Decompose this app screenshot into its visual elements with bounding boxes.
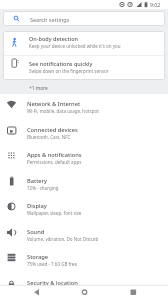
staticText: Connected devices xyxy=(27,126,78,134)
staticText: Security & location xyxy=(27,279,78,287)
staticText: Apps & notifications xyxy=(27,151,82,159)
button[interactable]: Display xyxy=(0,196,168,222)
staticText: 75% used - 7.60 GB free xyxy=(27,261,77,267)
button[interactable]: Connected devices xyxy=(0,120,168,146)
button[interactable] xyxy=(26,285,48,300)
staticText: Permissions, default apps xyxy=(27,159,82,165)
button[interactable]: Search settings xyxy=(3,11,165,26)
button[interactable]: Security & location xyxy=(0,273,168,299)
button[interactable]: Battery xyxy=(0,171,168,197)
button[interactable]: Apps & notifications xyxy=(0,145,168,171)
staticText: Wi-Fi, mobile, data usage, hotspot xyxy=(27,108,99,114)
staticText: Battery xyxy=(27,177,48,185)
staticText: +1 more xyxy=(29,85,48,92)
staticText: See notifications quickly xyxy=(29,60,93,67)
staticText: Volume, vibration, Do Not Disturb xyxy=(27,236,99,242)
staticText: Bluetooth, Cast, NFC xyxy=(27,134,71,140)
staticText: Display xyxy=(27,202,47,210)
button[interactable]: +1 more xyxy=(3,81,165,94)
button[interactable]: Network & Internet xyxy=(0,94,168,120)
button[interactable]: Storage xyxy=(0,247,168,273)
staticText: Storage xyxy=(27,253,49,261)
button[interactable] xyxy=(73,285,95,300)
staticText: Search settings xyxy=(30,16,70,23)
staticText: Wallpaper, sleep, font size xyxy=(27,210,82,216)
staticText: Swipe down on the fingerprint sensor xyxy=(29,68,109,74)
button[interactable]: See notifications quickly xyxy=(3,55,165,80)
staticText: Network & Internet xyxy=(27,100,81,108)
button[interactable] xyxy=(122,285,144,300)
staticText: Sound xyxy=(27,228,45,236)
button[interactable]: Sound xyxy=(0,222,168,248)
staticText: Keep your device unlocked while it's on … xyxy=(29,43,121,49)
staticText: 9:02 xyxy=(150,1,161,8)
staticText: On-body detection xyxy=(29,35,78,42)
button[interactable]: On-body detection xyxy=(3,31,165,55)
staticText: 72% - charging xyxy=(27,185,59,191)
